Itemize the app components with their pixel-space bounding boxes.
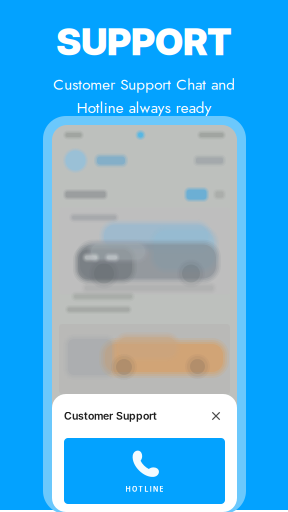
button[interactable]: HOTLINE (64, 438, 225, 504)
staticText: Customer Support (64, 410, 157, 422)
staticText: SUPPORT (56, 19, 232, 64)
staticText: HOTLINE (126, 485, 163, 493)
staticText: Hotline always ready (76, 96, 211, 119)
staticText: Customer Support Chat and (53, 73, 235, 95)
button[interactable]: Close (207, 407, 225, 425)
